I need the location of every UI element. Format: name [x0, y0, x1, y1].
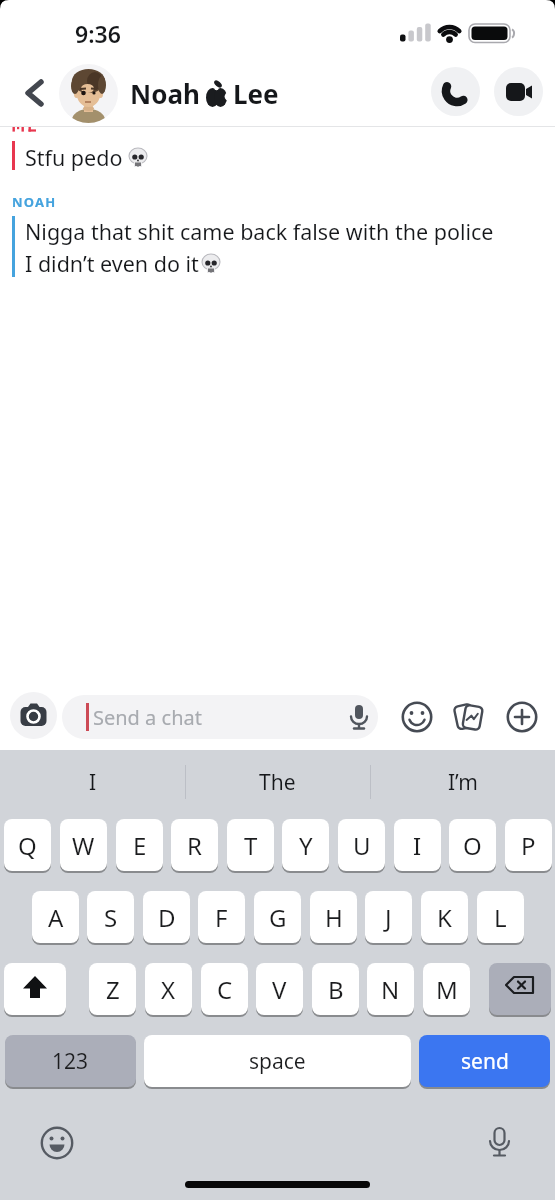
staticText: send — [461, 1047, 509, 1076]
staticText: Z — [106, 973, 120, 1006]
button[interactable]: L — [477, 891, 524, 943]
staticText: space — [249, 1047, 306, 1076]
staticText: L — [494, 901, 507, 934]
button[interactable] — [494, 67, 543, 116]
button[interactable]: U — [338, 819, 385, 871]
staticText: W — [72, 829, 95, 862]
staticText: I didn’t even do it — [25, 249, 199, 278]
button[interactable]: M — [423, 963, 470, 1015]
button[interactable]: O — [449, 819, 496, 871]
staticText: Y — [299, 829, 313, 862]
button[interactable]: J — [365, 891, 412, 943]
button[interactable]: D — [143, 891, 190, 943]
staticText: Noah — [130, 76, 200, 111]
button[interactable] — [431, 67, 480, 116]
staticText: H — [325, 901, 343, 934]
staticText: T — [244, 829, 258, 862]
staticText: P — [521, 829, 536, 862]
staticText: K — [437, 901, 452, 934]
button[interactable]: The — [185, 758, 370, 806]
button[interactable]: E — [116, 819, 163, 871]
button[interactable]: space — [144, 1035, 411, 1087]
button[interactable]: H — [310, 891, 357, 943]
button[interactable]: K — [421, 891, 468, 943]
button[interactable] — [504, 699, 540, 735]
button[interactable] — [4, 963, 66, 1015]
button[interactable]: T — [227, 819, 274, 871]
button[interactable]: I — [394, 819, 441, 871]
button[interactable] — [399, 699, 435, 735]
button[interactable]: C — [201, 963, 248, 1015]
staticText: C — [217, 973, 233, 1006]
button[interactable]: A — [32, 891, 79, 943]
staticText: N — [381, 973, 400, 1006]
staticText: Send a chat — [93, 704, 202, 731]
staticText: Nigga that shit came back false with the… — [25, 217, 494, 246]
button[interactable]: Q — [4, 819, 51, 871]
button[interactable]: R — [171, 819, 218, 871]
button[interactable]: I — [0, 758, 185, 806]
button[interactable]: F — [198, 891, 245, 943]
button[interactable] — [489, 963, 551, 1015]
button[interactable]: N — [367, 963, 414, 1015]
button[interactable] — [481, 1124, 519, 1162]
button[interactable]: W — [60, 819, 107, 871]
button[interactable]: G — [254, 891, 301, 943]
button[interactable] — [450, 699, 486, 735]
button[interactable]: S — [87, 891, 134, 943]
button[interactable]: I’m — [370, 758, 555, 806]
staticText: M — [436, 973, 458, 1006]
staticText: D — [158, 901, 176, 934]
button[interactable] — [14, 72, 56, 114]
button[interactable]: send — [419, 1035, 550, 1087]
button[interactable]: B — [312, 963, 359, 1015]
staticText: O — [463, 829, 482, 862]
button[interactable]: X — [145, 963, 192, 1015]
staticText: Q — [18, 829, 37, 862]
button[interactable]: P — [505, 819, 552, 871]
button[interactable] — [38, 1124, 76, 1162]
button[interactable]: V — [256, 963, 303, 1015]
staticText: U — [353, 829, 371, 862]
staticText: Lee — [233, 76, 279, 111]
staticText: B — [328, 973, 344, 1006]
button[interactable] — [59, 64, 118, 123]
staticText: I’m — [448, 768, 478, 797]
staticText: E — [133, 829, 147, 862]
staticText: S — [104, 901, 118, 934]
staticText: Stfu pedo — [25, 143, 123, 172]
staticText: J — [385, 901, 392, 934]
staticText: R — [187, 829, 202, 862]
button[interactable] — [10, 692, 57, 739]
button[interactable]: 123 — [5, 1035, 136, 1087]
staticText: 9:36 — [75, 18, 121, 49]
button[interactable]: Send a chat — [62, 695, 378, 739]
staticText: I — [89, 768, 97, 797]
staticText: 123 — [52, 1047, 89, 1076]
staticText: F — [215, 901, 228, 934]
staticText: X — [161, 973, 176, 1006]
button[interactable]: Y — [282, 819, 329, 871]
staticText: A — [48, 901, 64, 934]
staticText: NOAH — [12, 193, 57, 211]
staticText: The — [259, 768, 296, 797]
button[interactable]: Z — [89, 963, 136, 1015]
staticText: V — [272, 973, 287, 1006]
staticText: G — [269, 901, 287, 934]
staticText: I — [413, 829, 422, 862]
